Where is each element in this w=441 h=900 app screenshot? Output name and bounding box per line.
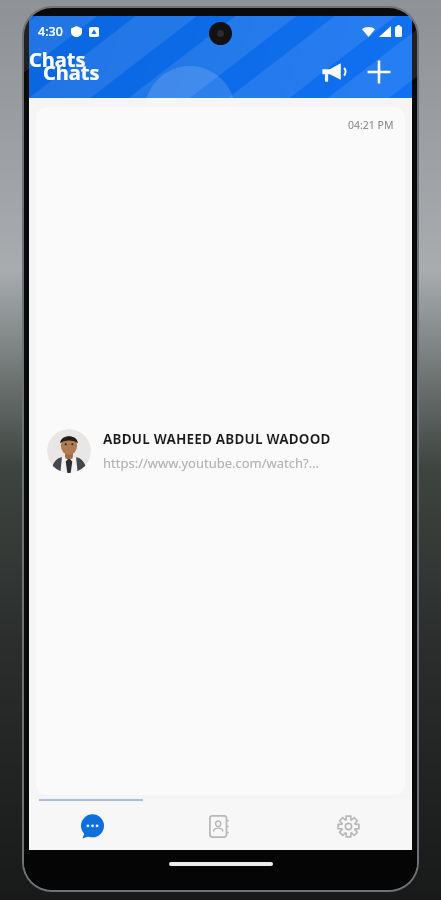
staticText: 04:21 PM	[348, 118, 394, 132]
button[interactable]: Chats	[29, 802, 156, 850]
button[interactable]: Contacts	[156, 802, 284, 850]
button[interactable]: Settings	[284, 802, 412, 850]
button[interactable]: ABDUL WAHEED ABDUL WADOOD	[36, 107, 405, 795]
button[interactable]: New chat	[358, 51, 400, 93]
button[interactable]: Broadcast	[312, 52, 352, 92]
staticText: Chats	[43, 59, 100, 86]
staticText: ABDUL WAHEED ABDUL WADOOD	[103, 430, 331, 448]
staticText: https://www.youtube.com/watch?…	[103, 454, 319, 472]
staticText: Chats	[29, 46, 86, 73]
staticText: 4:30	[38, 23, 63, 40]
